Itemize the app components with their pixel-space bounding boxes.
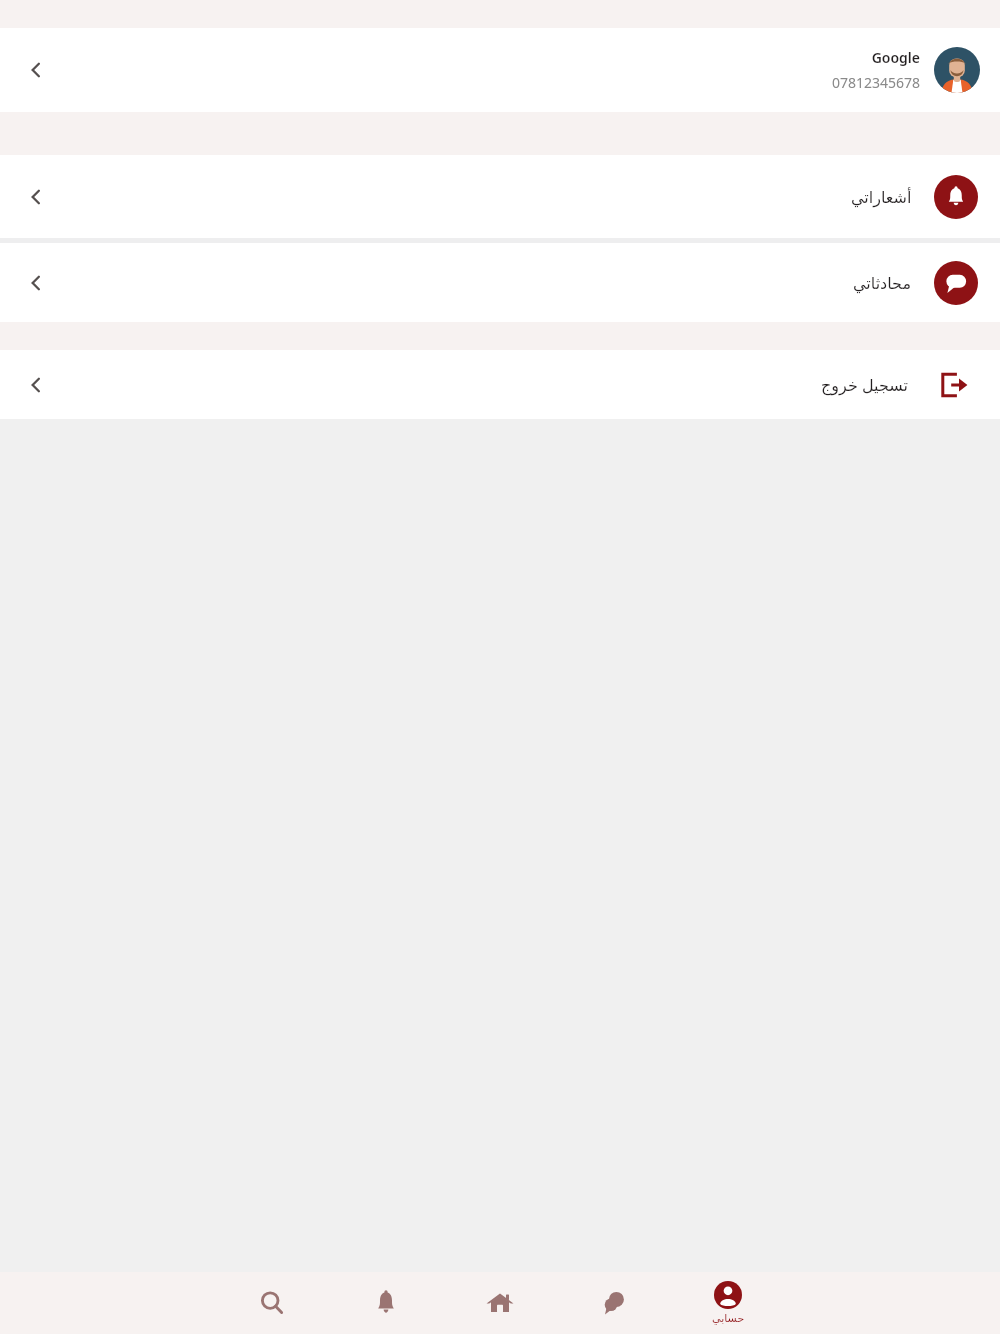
button[interactable]: Open (0, 155, 1000, 238)
other: Open (24, 373, 48, 397)
staticText: 07812345678 (831, 73, 920, 92)
button[interactable]: حسابي (671, 1272, 785, 1334)
staticText: محادثاتي (853, 274, 912, 293)
button[interactable]: Open (0, 350, 1000, 419)
other: Open (24, 271, 48, 295)
button[interactable]: Home (443, 1272, 557, 1334)
staticText: حسابي (712, 1312, 745, 1325)
other: Open (24, 185, 48, 209)
other: Profile picture (934, 47, 980, 93)
other: Open (24, 58, 48, 82)
button[interactable]: Open (0, 243, 1000, 322)
staticText: Google (871, 48, 920, 67)
other: Logout (938, 370, 968, 400)
button[interactable]: Open (0, 28, 1000, 112)
button[interactable]: Search (215, 1272, 329, 1334)
button[interactable]: Chats (557, 1272, 671, 1334)
staticText: أشعاراتي (851, 188, 912, 207)
button[interactable]: Notifications (329, 1272, 443, 1334)
staticText: تسجيل خروج (821, 374, 908, 396)
